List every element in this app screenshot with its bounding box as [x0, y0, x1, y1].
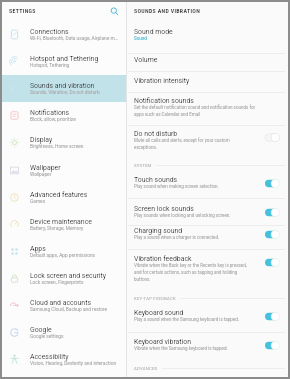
staticText: Cloud and accounts: [30, 299, 91, 307]
button[interactable]: [127, 249, 288, 292]
staticText: Default apps, App permissions: [30, 253, 96, 259]
button[interactable]: [127, 332, 288, 360]
staticText: Google: [30, 326, 52, 334]
staticText: Charging sound: [134, 227, 183, 235]
staticText: Hotspot, Tethering: [30, 63, 70, 69]
staticText: Samsung Cloud, Backup and restore: [30, 307, 108, 313]
button[interactable]: Display: [2, 129, 126, 156]
button[interactable]: [127, 307, 288, 332]
button[interactable]: Notifications: [2, 102, 126, 129]
staticText: Lock screen and security: [30, 272, 106, 280]
button[interactable]: [127, 198, 288, 225]
button[interactable]: Toggle: [265, 132, 279, 143]
staticText: Games: [30, 199, 46, 205]
button[interactable]: Cloud and accounts: [2, 292, 126, 319]
button[interactable]: [127, 92, 288, 125]
staticText: SETTINGS: [9, 8, 36, 15]
button[interactable]: [127, 53, 288, 72]
staticText: SYSTEM: [134, 163, 152, 168]
staticText: Play sounds when locking and unlocking s…: [134, 213, 231, 218]
button[interactable]: Google: [2, 319, 126, 346]
staticText: Vibrate when the Back key or the Recents…: [134, 263, 249, 283]
staticText: Keyboard vibration: [134, 338, 192, 346]
button[interactable]: Sounds and vibration: [2, 75, 126, 102]
staticText: Do not disturb: [134, 130, 178, 138]
button[interactable]: Toggle: [265, 311, 279, 322]
staticText: Hotspot and Tethering: [30, 55, 99, 63]
staticText: Connections: [30, 28, 69, 36]
staticText: Apps: [30, 245, 46, 253]
button[interactable]: Search: [108, 5, 121, 18]
staticText: Keyboard sound: [134, 309, 184, 317]
button[interactable]: Accessibility: [2, 346, 126, 373]
button[interactable]: [127, 71, 288, 92]
staticText: Sound mode: [134, 28, 173, 36]
staticText: Google settings: [30, 334, 64, 340]
staticText: Block, allow, prioritize: [30, 117, 76, 123]
staticText: Touch sounds: [134, 176, 178, 184]
staticText: SOUNDS AND VIBRATION: [134, 8, 201, 15]
staticText: Brightness, Home screen: [30, 144, 84, 150]
button[interactable]: Toggle: [265, 207, 279, 218]
staticText: Wallpaper: [30, 172, 52, 178]
button[interactable]: Device maintenance: [2, 211, 126, 238]
button[interactable]: Toggle: [265, 257, 279, 268]
button[interactable]: Toggle: [265, 340, 279, 351]
staticText: Sounds and vibration: [30, 82, 95, 90]
staticText: Sound: [134, 36, 147, 41]
staticText: Play a sound when a charger is connected…: [134, 235, 220, 240]
button[interactable]: [127, 225, 288, 249]
staticText: Volume: [134, 56, 158, 64]
staticText: KEY-TAP FEEDBACK: [134, 296, 176, 301]
button[interactable]: [127, 22, 288, 53]
staticText: Set the default notification sound and n…: [134, 105, 259, 118]
staticText: Vision, Hearing, Dexterity and interacti…: [30, 361, 117, 367]
button[interactable]: Toggle: [265, 178, 279, 189]
staticText: Advanced features: [30, 191, 88, 199]
staticText: Battery, Storage, Memory: [30, 226, 84, 232]
staticText: Lock screen, Fingerprints: [30, 280, 84, 286]
staticText: Device maintenance: [30, 218, 92, 226]
staticText: Accessibility: [30, 353, 69, 361]
staticText: Play sound when making screen selection.: [134, 184, 219, 189]
staticText: Play a sound when the Samsung keyboard i…: [134, 317, 239, 322]
button[interactable]: Hotspot and Tethering: [2, 48, 126, 75]
staticText: Wallpaper: [30, 164, 61, 172]
staticText: ADVANCED: [134, 366, 158, 371]
button[interactable]: Lock screen and security: [2, 265, 126, 292]
staticText: Vibration intensity: [134, 77, 190, 85]
staticText: Notification sounds: [134, 97, 194, 105]
button[interactable]: [127, 125, 288, 159]
staticText: Wi-Fi, Bluetooth, Data usage, Airplane m…: [30, 36, 118, 42]
staticText: Screen lock sounds: [134, 205, 194, 213]
button[interactable]: [127, 174, 288, 198]
button[interactable]: Apps: [2, 238, 126, 265]
staticText: Vibration feedback: [134, 255, 192, 263]
button[interactable]: Wallpaper: [2, 157, 126, 184]
staticText: Mute all calls and alerts, except for yo…: [134, 138, 249, 151]
button[interactable]: Advanced features: [2, 184, 126, 211]
staticText: Notifications: [30, 109, 70, 117]
staticText: Sounds, Vibration, Do not disturb: [30, 90, 100, 96]
staticText: Vibrate when the Samsung keyboard is tap…: [134, 346, 228, 351]
staticText: Display: [30, 136, 53, 144]
button[interactable]: Connections: [2, 21, 126, 48]
button[interactable]: Toggle: [265, 229, 279, 240]
